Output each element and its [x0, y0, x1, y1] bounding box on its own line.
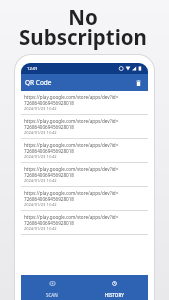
staticText: https://play.google.com/store/apps/dev?i…: [24, 142, 119, 148]
staticText: 7268640069456928018: [24, 220, 74, 226]
staticText: 2024/01/23 13:42: [24, 106, 57, 111]
staticText: Subscription: [19, 23, 147, 51]
button[interactable]: https://play.google.com/store/apps/dev?i…: [21, 139, 148, 162]
staticText: 7268640069456928018: [24, 124, 74, 130]
staticText: 12:01: [27, 66, 38, 72]
staticText: https://play.google.com/store/apps/dev?i…: [24, 214, 119, 220]
button[interactable]: https://play.google.com/store/apps/dev?i…: [21, 91, 148, 114]
staticText: No: [68, 3, 98, 31]
staticText: https://play.google.com/store/apps/dev?i…: [24, 190, 119, 196]
staticText: https://play.google.com/store/apps/dev?i…: [24, 166, 119, 172]
staticText: 2024/01/23 13:42: [24, 154, 57, 159]
staticText: 2024/01/23 13:42: [24, 130, 57, 135]
staticText: https://play.google.com/store/apps/dev?i…: [24, 94, 119, 100]
staticText: 7268640069456928018: [24, 148, 74, 154]
staticText: QR Code: [25, 78, 52, 87]
staticText: 7268640069456928018: [24, 196, 74, 202]
button[interactable]: https://play.google.com/store/apps/dev?i…: [21, 187, 148, 210]
button[interactable]: HISTORY: [83, 275, 146, 300]
button[interactable]: https://play.google.com/store/apps/dev?i…: [21, 163, 148, 186]
staticText: 2024/01/23 13:42: [24, 202, 57, 207]
button[interactable]: SCAN: [21, 275, 83, 300]
staticText: 7268640069456928018: [24, 100, 74, 106]
button[interactable]: https://play.google.com/store/apps/dev?i…: [21, 211, 148, 234]
button[interactable]: Delete all: [132, 76, 145, 89]
staticText: HISTORY: [105, 292, 124, 298]
staticText: 2024/01/23 13:42: [24, 178, 57, 183]
button[interactable]: https://play.google.com/store/apps/dev?i…: [21, 115, 148, 138]
staticText: SCAN: [46, 292, 58, 298]
staticText: 2024/01/23 13:42: [24, 226, 57, 231]
staticText: https://play.google.com/store/apps/dev?i…: [24, 118, 119, 124]
staticText: 7268640069456928018: [24, 172, 74, 178]
